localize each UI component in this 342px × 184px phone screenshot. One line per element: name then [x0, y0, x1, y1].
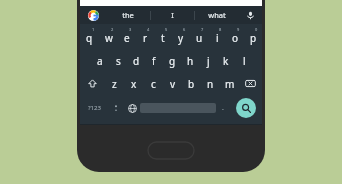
staticText: 1 — [92, 27, 95, 32]
staticText: c — [151, 77, 156, 91]
staticText: the — [122, 10, 134, 20]
button[interactable]: Voice input — [238, 6, 262, 24]
staticText: t — [161, 31, 165, 45]
button[interactable]: Backspace — [239, 72, 262, 95]
button[interactable]: 3 — [118, 24, 136, 49]
button[interactable]: 8 — [208, 24, 226, 49]
staticText: l — [243, 54, 246, 68]
button[interactable]: 5 — [154, 24, 172, 49]
staticText: 3 — [129, 27, 132, 32]
button[interactable]: Change language — [124, 95, 140, 121]
button[interactable]: 9 — [226, 24, 244, 49]
staticText: m — [225, 77, 235, 91]
button[interactable]: Search — [236, 98, 256, 118]
button[interactable]: 0 — [244, 24, 262, 49]
button[interactable]: x — [124, 72, 144, 95]
button[interactable]: s — [109, 49, 127, 72]
staticText: I — [171, 10, 174, 20]
button[interactable]: . — [216, 95, 230, 121]
button[interactable]: k — [217, 49, 235, 72]
button[interactable]: c — [144, 72, 163, 95]
button[interactable]: Google — [80, 6, 106, 24]
staticText: v — [170, 77, 176, 91]
button[interactable]: a — [90, 49, 109, 72]
staticText: r — [143, 31, 148, 45]
staticText: z — [112, 77, 117, 91]
staticText: o — [232, 31, 239, 45]
staticText: b — [188, 77, 195, 91]
button[interactable]: h — [181, 49, 199, 72]
staticText: y — [178, 31, 184, 45]
button[interactable]: z — [104, 72, 124, 95]
staticText: q — [86, 31, 93, 45]
button[interactable]: d — [127, 49, 145, 72]
staticText: e — [124, 31, 130, 45]
staticText: i — [216, 31, 219, 45]
staticText: what — [208, 10, 226, 20]
staticText: 2 — [111, 27, 114, 32]
button[interactable]: g — [163, 49, 181, 72]
staticText: h — [187, 54, 194, 68]
button[interactable]: 2 — [99, 24, 118, 49]
button[interactable]: Emoji — [108, 95, 124, 121]
staticText: 7 — [201, 27, 204, 32]
button[interactable]: 1 — [80, 24, 99, 49]
button[interactable]: b — [182, 72, 201, 95]
staticText: x — [131, 77, 137, 91]
staticText: a — [97, 54, 103, 68]
button[interactable]: j — [199, 49, 217, 72]
staticText: p — [250, 31, 257, 45]
staticText: d — [133, 54, 140, 68]
staticText: u — [196, 31, 203, 45]
staticText: 9 — [237, 27, 240, 32]
button[interactable]: 6 — [172, 24, 190, 49]
button[interactable]: n — [201, 72, 220, 95]
staticText: w — [105, 31, 113, 45]
staticText: j — [207, 54, 210, 68]
staticText: n — [207, 77, 214, 91]
button[interactable]: f — [145, 49, 163, 72]
button[interactable]: what — [195, 6, 238, 24]
button[interactable]: 4 — [136, 24, 154, 49]
staticText: 4 — [147, 27, 150, 32]
button[interactable]: the — [106, 6, 150, 24]
staticText: 0 — [255, 27, 258, 32]
button[interactable]: l — [235, 49, 253, 72]
staticText: s — [116, 54, 121, 68]
staticText: g — [169, 54, 176, 68]
button[interactable]: Shift — [80, 72, 104, 95]
button[interactable]: Home — [148, 142, 194, 159]
button[interactable]: ?123 — [80, 95, 108, 121]
button[interactable]: v — [163, 72, 182, 95]
staticText: ?123 — [88, 104, 101, 112]
button[interactable]: 7 — [190, 24, 208, 49]
staticText: . — [222, 103, 224, 113]
button[interactable]: m — [220, 72, 239, 95]
staticText: 5 — [165, 27, 168, 32]
button[interactable]: I — [151, 6, 194, 24]
staticText: 8 — [219, 27, 222, 32]
staticText: f — [152, 54, 156, 68]
staticText: 6 — [183, 27, 186, 32]
staticText: k — [223, 54, 229, 68]
